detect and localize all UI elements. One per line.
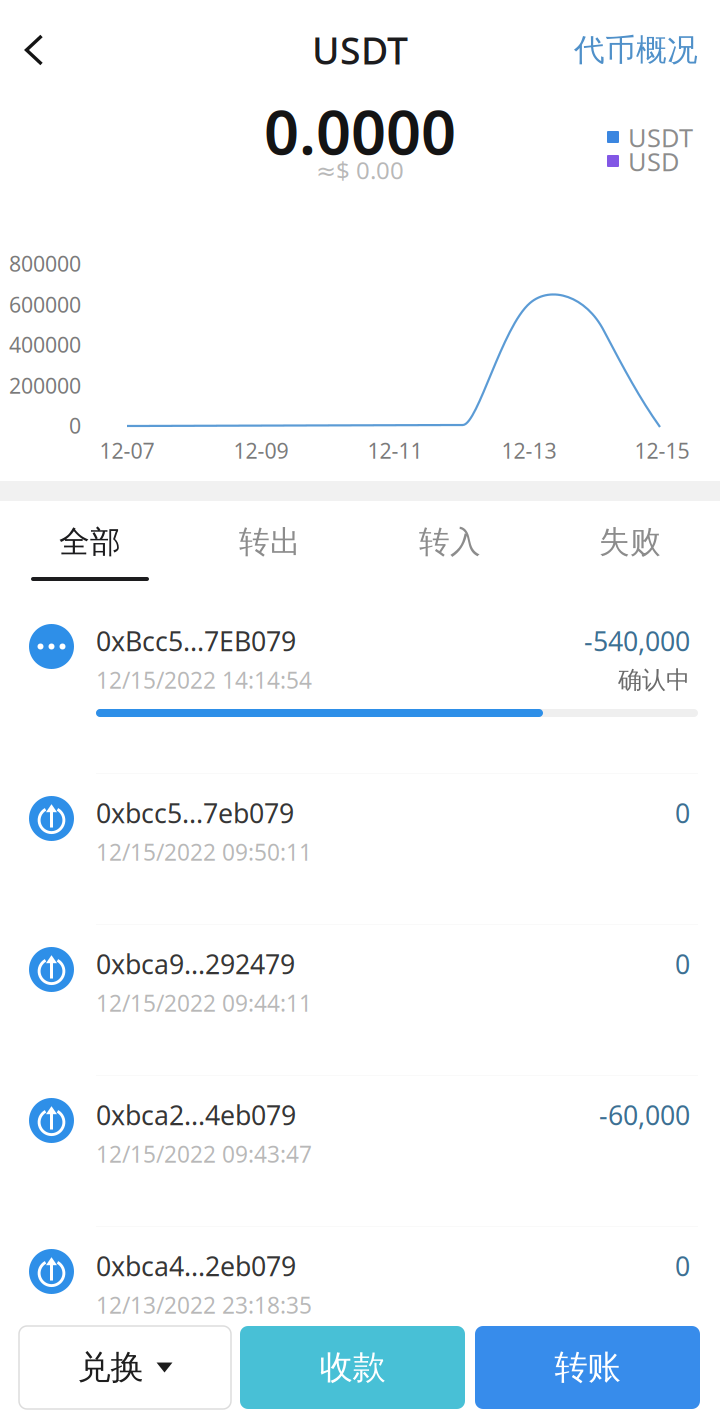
staticText: 0xbca2...4eb079 bbox=[96, 1097, 296, 1133]
staticText: ≈$ 0.00 bbox=[316, 154, 404, 186]
staticText: 0.0000 bbox=[264, 90, 456, 172]
staticText: 0 bbox=[675, 1248, 690, 1284]
staticText: 400000 bbox=[9, 330, 81, 359]
button[interactable]: 兑换 bbox=[19, 1326, 231, 1409]
staticText: -60,000 bbox=[599, 1097, 690, 1133]
staticText: 收款 bbox=[319, 1347, 385, 1388]
staticText: 600000 bbox=[9, 290, 81, 319]
staticText: 0xBcc5...7EB079 bbox=[96, 623, 296, 659]
button[interactable]: 0xBcc5...7EB079 bbox=[0, 602, 720, 773]
button[interactable]: 转账 bbox=[475, 1326, 700, 1409]
staticText: 0xbca4...2eb079 bbox=[96, 1248, 296, 1284]
staticText: 0xbca9...292479 bbox=[96, 946, 295, 982]
staticText: 12-09 bbox=[233, 436, 288, 465]
staticText: USD bbox=[628, 145, 679, 178]
button[interactable]: 转入 bbox=[360, 501, 540, 601]
staticText: 失败 bbox=[599, 523, 661, 561]
staticText: 800000 bbox=[9, 249, 81, 278]
staticText: 12/15/2022 09:50:11 bbox=[96, 837, 312, 867]
staticText: 200000 bbox=[9, 371, 81, 400]
button[interactable]: 失败 bbox=[540, 501, 720, 601]
staticText: USDT bbox=[312, 25, 408, 75]
staticText: 确认中 bbox=[618, 665, 690, 695]
button[interactable]: 0xbca2...4eb079 bbox=[0, 1076, 720, 1226]
staticText: 12/15/2022 14:14:54 bbox=[96, 665, 312, 695]
button[interactable]: 代币概况 bbox=[528, 20, 698, 80]
staticText: 12-11 bbox=[367, 436, 422, 465]
staticText: 12/15/2022 09:43:47 bbox=[96, 1139, 312, 1169]
staticText: 全部 bbox=[59, 523, 121, 561]
staticText: 0xbcc5...7eb079 bbox=[96, 795, 294, 831]
staticText: 转账 bbox=[554, 1347, 620, 1388]
staticText: 12/13/2022 23:18:35 bbox=[96, 1290, 312, 1320]
button[interactable]: 0xbca4...2eb079 bbox=[0, 1227, 720, 1377]
staticText: -540,000 bbox=[584, 623, 690, 659]
button[interactable]: 转出 bbox=[180, 501, 360, 601]
staticText: USDT bbox=[628, 121, 693, 154]
button[interactable]: Back bbox=[3, 17, 65, 83]
staticText: 12/15/2022 09:44:11 bbox=[96, 988, 312, 1018]
staticText: 0 bbox=[69, 411, 81, 440]
staticText: 代币概况 bbox=[574, 31, 698, 69]
staticText: 兑换 bbox=[77, 1347, 143, 1388]
button[interactable]: 0xbcc5...7eb079 bbox=[0, 774, 720, 924]
button[interactable]: 0xbca9...292479 bbox=[0, 925, 720, 1075]
staticText: 转出 bbox=[239, 523, 301, 561]
staticText: 0 bbox=[675, 946, 690, 982]
staticText: 12-15 bbox=[634, 436, 689, 465]
staticText: 12-13 bbox=[501, 436, 556, 465]
staticText: 转入 bbox=[419, 523, 481, 561]
button[interactable]: 全部 bbox=[0, 501, 180, 601]
button[interactable]: 收款 bbox=[240, 1326, 465, 1409]
staticText: 12-07 bbox=[99, 436, 154, 465]
staticText: 0 bbox=[675, 795, 690, 831]
